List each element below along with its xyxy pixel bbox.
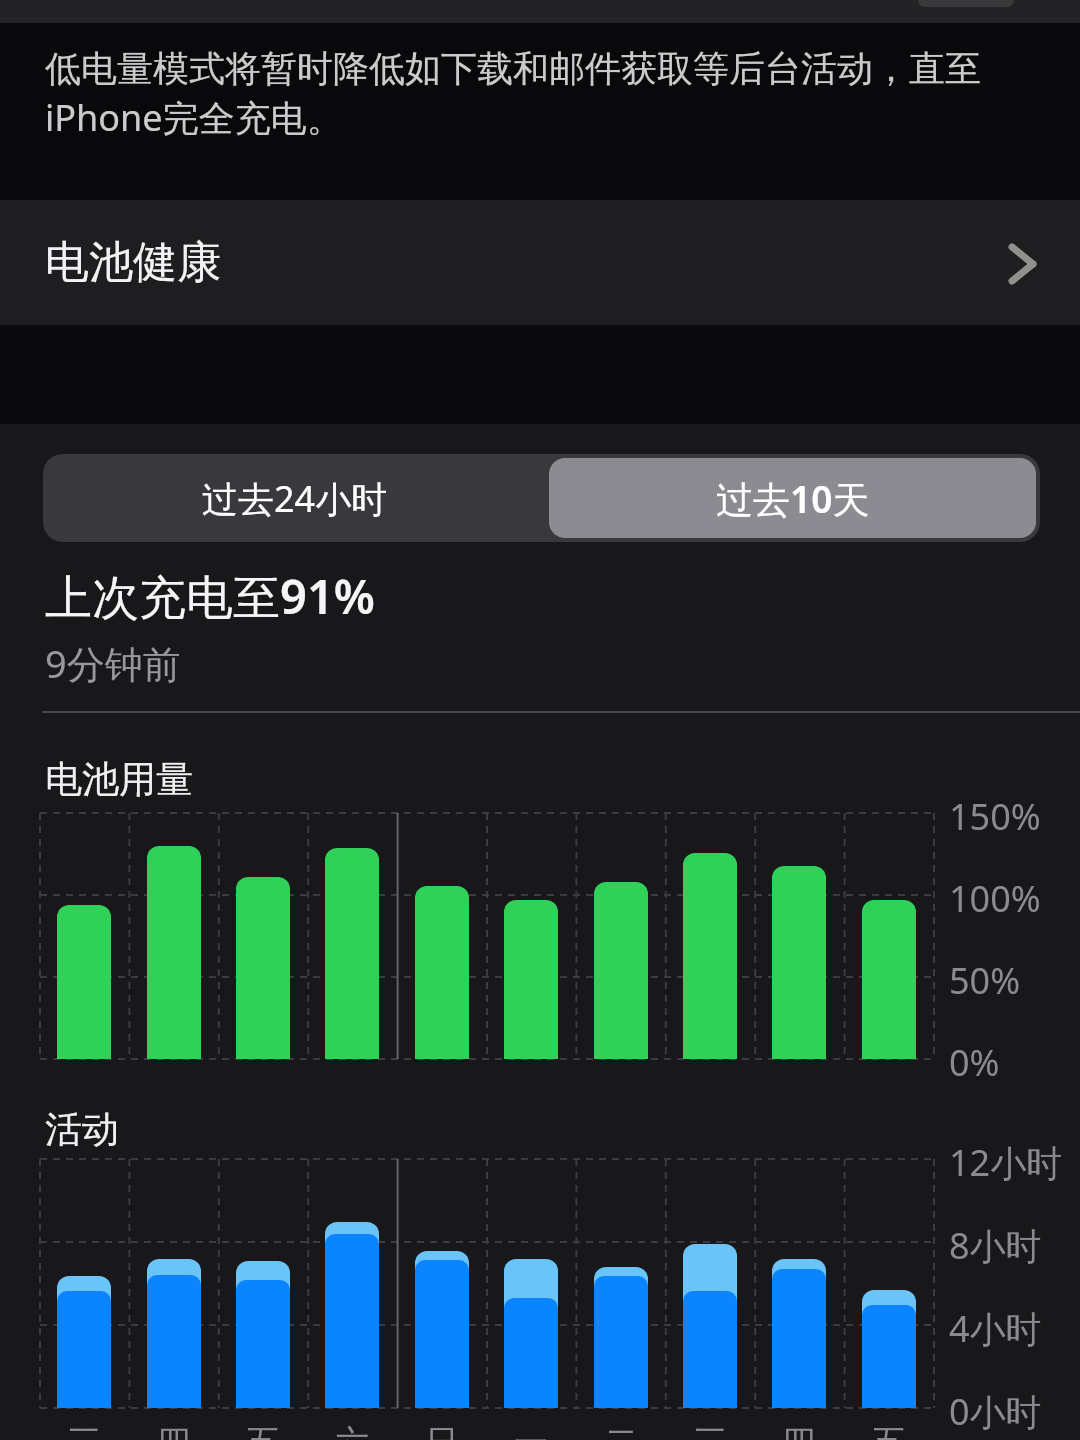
staticText: 低电量模式将暂时降低如下载和邮件获取等后台活动，直至: [45, 46, 981, 91]
staticText: 12小时: [949, 1138, 1063, 1187]
staticText: 4小时: [949, 1304, 1042, 1353]
button[interactable]: 过去24小时: [43, 454, 547, 542]
staticText: 电池健康: [45, 235, 221, 290]
staticText: 150%: [949, 792, 1041, 841]
staticText: iPhone完全充电。: [45, 93, 343, 142]
staticText: 0%: [949, 1038, 1000, 1087]
staticText: 六: [335, 1421, 369, 1440]
staticText: 过去24小时: [202, 474, 388, 523]
staticText: 100%: [949, 874, 1041, 923]
staticText: 活动: [45, 1106, 119, 1153]
staticText: 50%: [949, 956, 1021, 1005]
staticText: 日: [425, 1421, 459, 1440]
staticText: 电池用量: [45, 756, 193, 803]
button[interactable]: 过去10天: [549, 458, 1036, 538]
staticText: 9分钟前: [45, 637, 181, 689]
staticText: 上次充电至91%: [45, 564, 375, 628]
staticText: 三: [67, 1421, 101, 1440]
staticText: 四: [782, 1421, 816, 1440]
staticText: 0小时: [949, 1387, 1042, 1436]
button[interactable]: 电池健康: [0, 200, 1080, 325]
staticText: 四: [157, 1421, 191, 1440]
staticText: 五: [872, 1421, 906, 1440]
staticText: 8小时: [949, 1221, 1042, 1270]
staticText: 五: [246, 1421, 280, 1440]
staticText: 二: [604, 1421, 638, 1440]
staticText: 过去10天: [716, 473, 870, 524]
staticText: 三: [693, 1421, 727, 1440]
staticText: 一: [514, 1421, 548, 1440]
